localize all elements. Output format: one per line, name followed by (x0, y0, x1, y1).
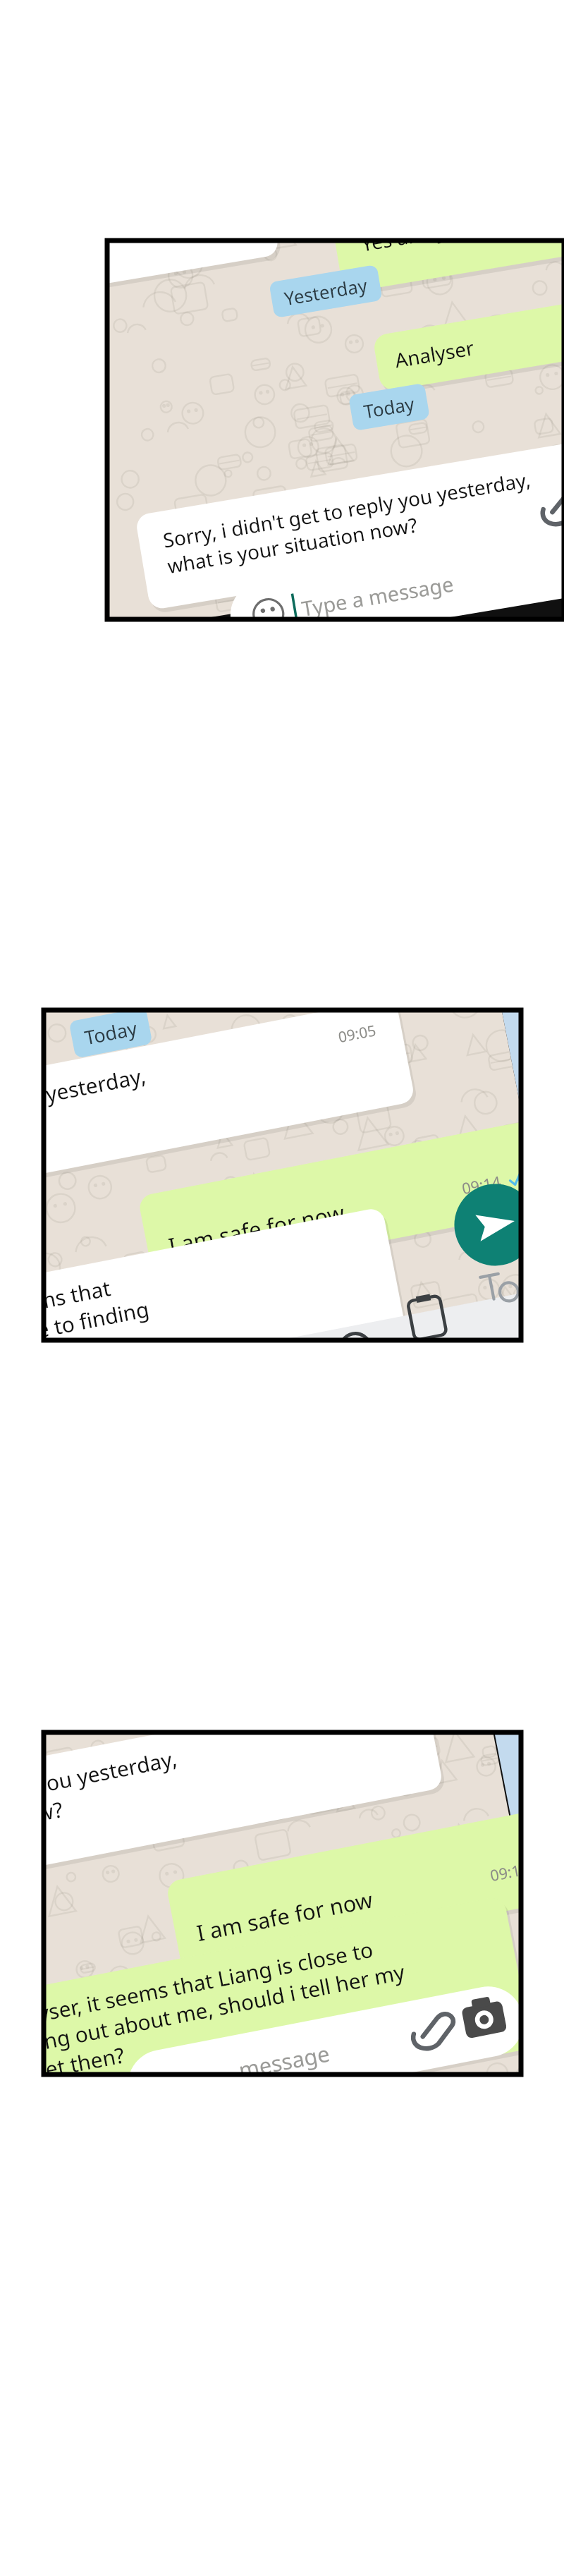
button[interactable]: Webtoon page: WhatsApp chat panels (0, 0, 564, 2576)
